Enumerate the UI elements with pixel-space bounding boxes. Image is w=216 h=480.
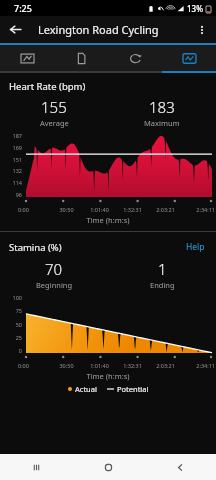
staticText: 155 xyxy=(41,97,67,117)
staticText: 0 xyxy=(0,347,22,354)
button[interactable]: Details xyxy=(54,45,108,71)
staticText: 169 xyxy=(0,144,22,151)
staticText: 96 xyxy=(0,191,22,198)
staticText: 75 xyxy=(0,307,22,314)
staticText: Stamina (%) xyxy=(9,241,184,254)
staticText: 151 xyxy=(0,156,22,163)
staticText: 30:50 xyxy=(50,206,83,213)
staticText: 100 xyxy=(0,294,22,301)
button[interactable]: More options xyxy=(188,16,216,43)
staticText: 2:34:11 xyxy=(182,206,215,213)
staticText: Maximum xyxy=(144,118,180,128)
staticText: 70 xyxy=(45,259,63,279)
button[interactable]: Laps xyxy=(108,45,162,71)
button[interactable]: Map xyxy=(0,45,54,71)
staticText: Heart Rate (bpm) xyxy=(9,80,86,93)
button[interactable]: Back xyxy=(0,16,30,43)
staticText: Time (h:m:s) xyxy=(0,371,216,381)
staticText: 50 xyxy=(0,321,22,328)
staticText: 2:03:21 xyxy=(149,362,182,369)
staticText: 13% xyxy=(187,3,203,14)
button[interactable]: Recents xyxy=(0,454,72,480)
staticText: 1 xyxy=(158,259,167,279)
staticText: Potential xyxy=(117,384,149,394)
staticText: 1:32:31 xyxy=(116,206,149,213)
staticText: 2:03:21 xyxy=(149,206,182,213)
staticText: Ending xyxy=(150,280,175,290)
staticText: 1:01:40 xyxy=(83,206,116,213)
staticText: 187 xyxy=(0,132,22,139)
staticText: Time (h:m:s) xyxy=(0,215,216,225)
button[interactable]: Back xyxy=(144,454,216,480)
staticText: 30:50 xyxy=(50,362,83,369)
staticText: 114 xyxy=(0,179,22,186)
staticText: 1:32:31 xyxy=(116,362,149,369)
staticText: 25 xyxy=(0,334,22,341)
button[interactable]: Home xyxy=(72,454,144,480)
staticText: Average xyxy=(40,118,69,128)
button[interactable]: Help xyxy=(184,239,207,255)
staticText: 132 xyxy=(0,167,22,174)
staticText: Actual xyxy=(75,384,97,394)
staticText: 183 xyxy=(149,97,175,117)
staticText: 0:00 xyxy=(18,362,50,369)
staticText: Help xyxy=(186,241,205,253)
staticText: 0:00 xyxy=(18,206,50,213)
staticText: Lexington Road Cycling xyxy=(38,22,188,37)
staticText: Beginning xyxy=(36,280,73,290)
staticText: 7:25 xyxy=(14,2,32,14)
staticText: 2:34:11 xyxy=(182,362,215,369)
staticText: 1:01:40 xyxy=(83,362,116,369)
button[interactable]: Charts xyxy=(162,45,216,71)
